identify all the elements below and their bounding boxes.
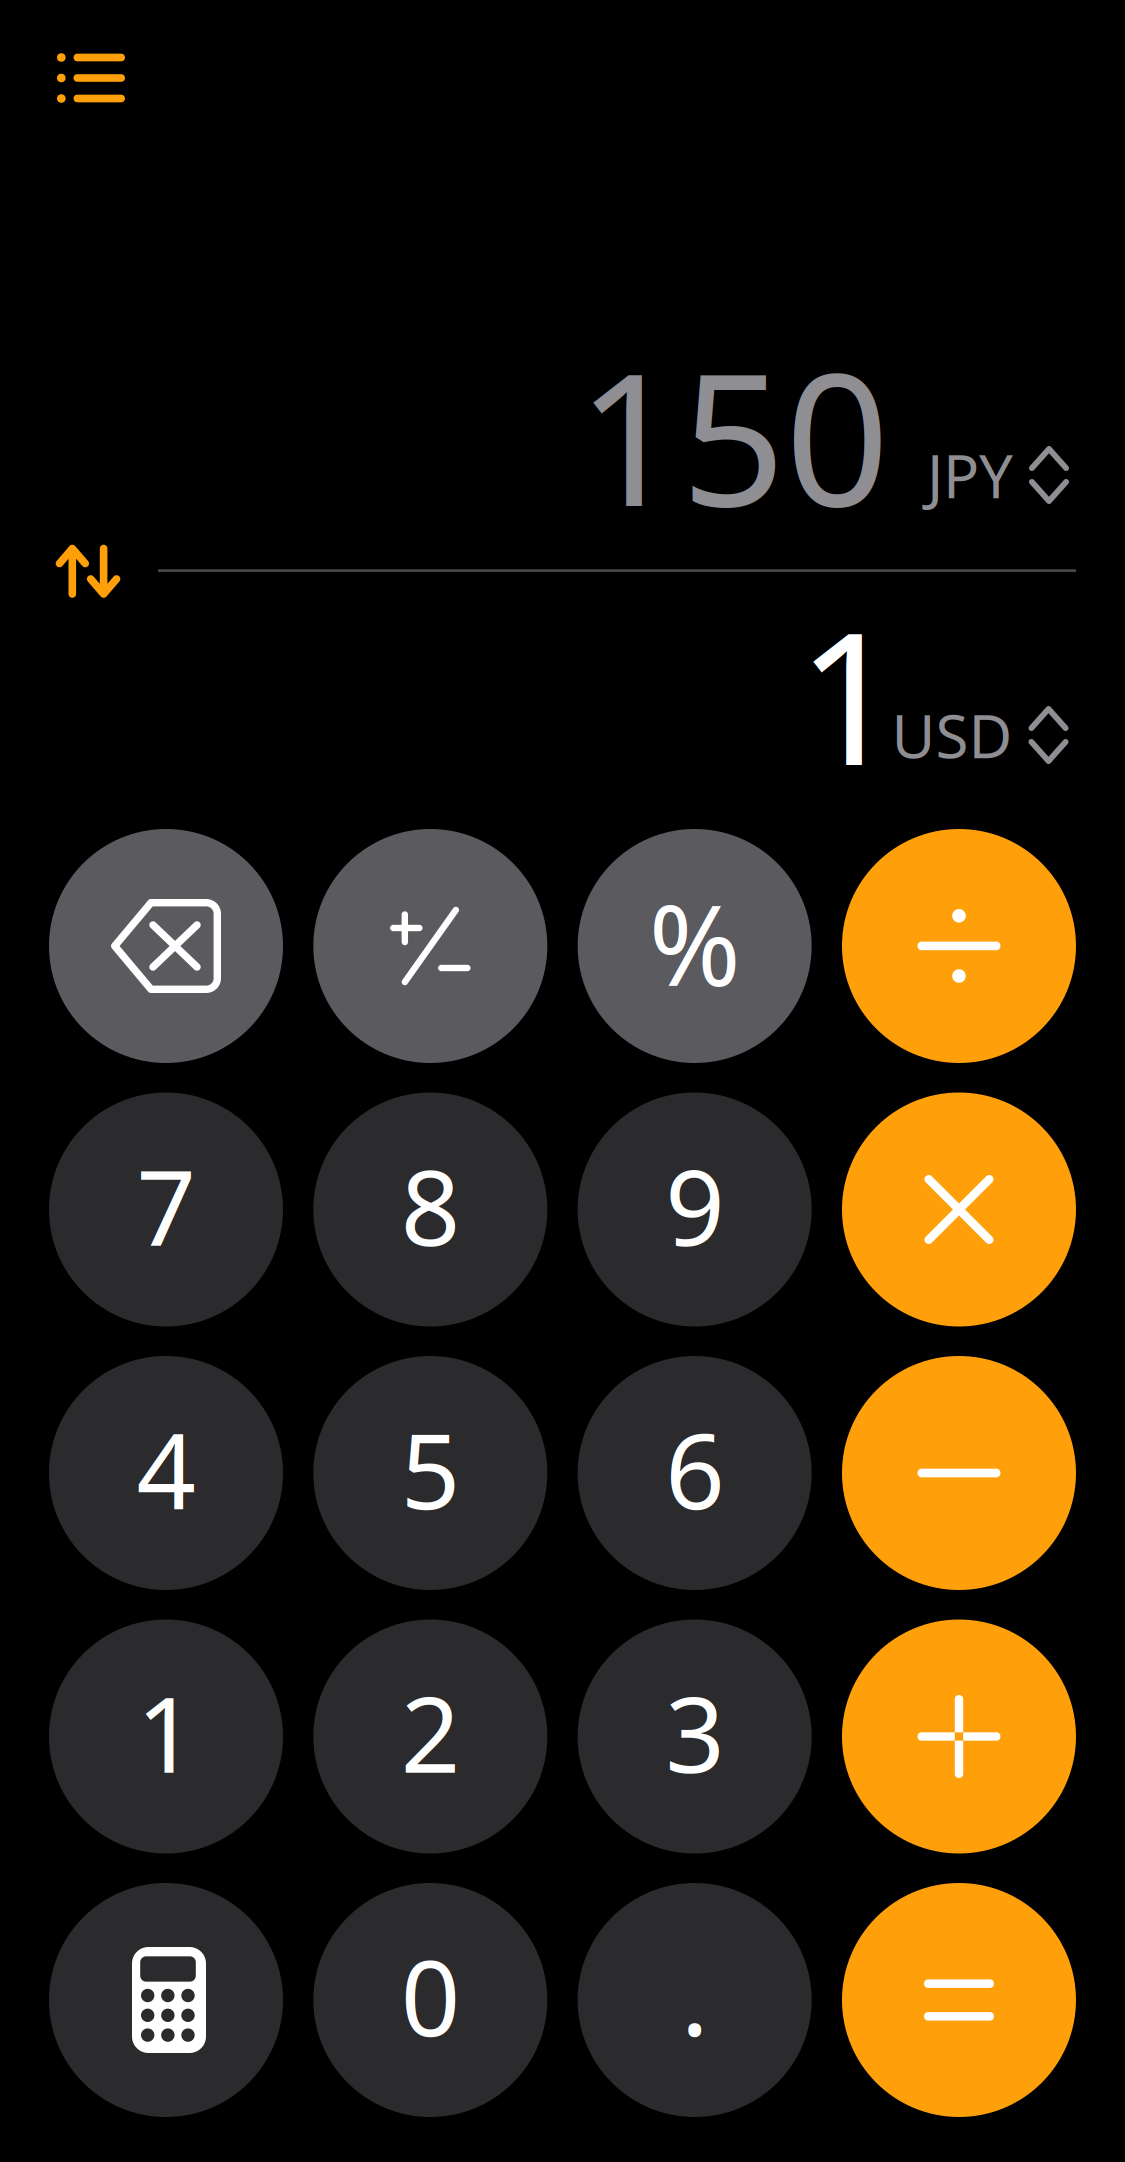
staticText: 7 — [136, 1136, 195, 1274]
button[interactable] — [578, 829, 812, 1063]
button[interactable]: Calculator — [49, 1883, 283, 2117]
button[interactable] — [313, 1092, 547, 1326]
button[interactable]: Add — [842, 1619, 1076, 1853]
button[interactable] — [49, 1092, 283, 1326]
button[interactable]: USD — [885, 685, 1074, 785]
staticText: . — [681, 1927, 709, 2065]
button[interactable]: Swap currencies — [40, 529, 136, 613]
button[interactable] — [313, 1619, 547, 1853]
staticText: 1 — [797, 573, 901, 815]
button[interactable] — [578, 1883, 812, 2117]
staticText: 6 — [665, 1400, 724, 1538]
staticText: 3 — [665, 1663, 724, 1801]
staticText: 2 — [401, 1663, 460, 1801]
button[interactable]: Delete — [49, 829, 283, 1063]
button[interactable] — [578, 1619, 812, 1853]
button[interactable]: Plus minus — [313, 829, 547, 1063]
staticText: JPY — [927, 435, 1013, 515]
staticText: 150 — [577, 314, 889, 556]
staticText: USD — [891, 695, 1012, 775]
button[interactable]: JPY — [921, 425, 1075, 525]
button[interactable] — [49, 1619, 283, 1853]
button[interactable]: Subtract — [842, 1356, 1076, 1590]
button[interactable]: Multiply — [842, 1092, 1076, 1326]
button[interactable]: Divide — [842, 829, 1076, 1063]
staticText: 4 — [136, 1400, 195, 1538]
button[interactable] — [578, 1356, 812, 1590]
staticText: 8 — [401, 1136, 460, 1274]
button[interactable] — [49, 1356, 283, 1590]
staticText: % — [649, 869, 741, 1016]
staticText: 9 — [665, 1136, 724, 1274]
button[interactable]: Equals — [842, 1883, 1076, 2117]
staticText: 0 — [401, 1927, 460, 2065]
button[interactable] — [578, 1092, 812, 1326]
button[interactable] — [313, 1356, 547, 1590]
staticText: 5 — [401, 1400, 460, 1538]
staticText: 1 — [136, 1663, 195, 1801]
button[interactable]: Currency list — [39, 35, 143, 121]
button[interactable] — [313, 1883, 547, 2117]
